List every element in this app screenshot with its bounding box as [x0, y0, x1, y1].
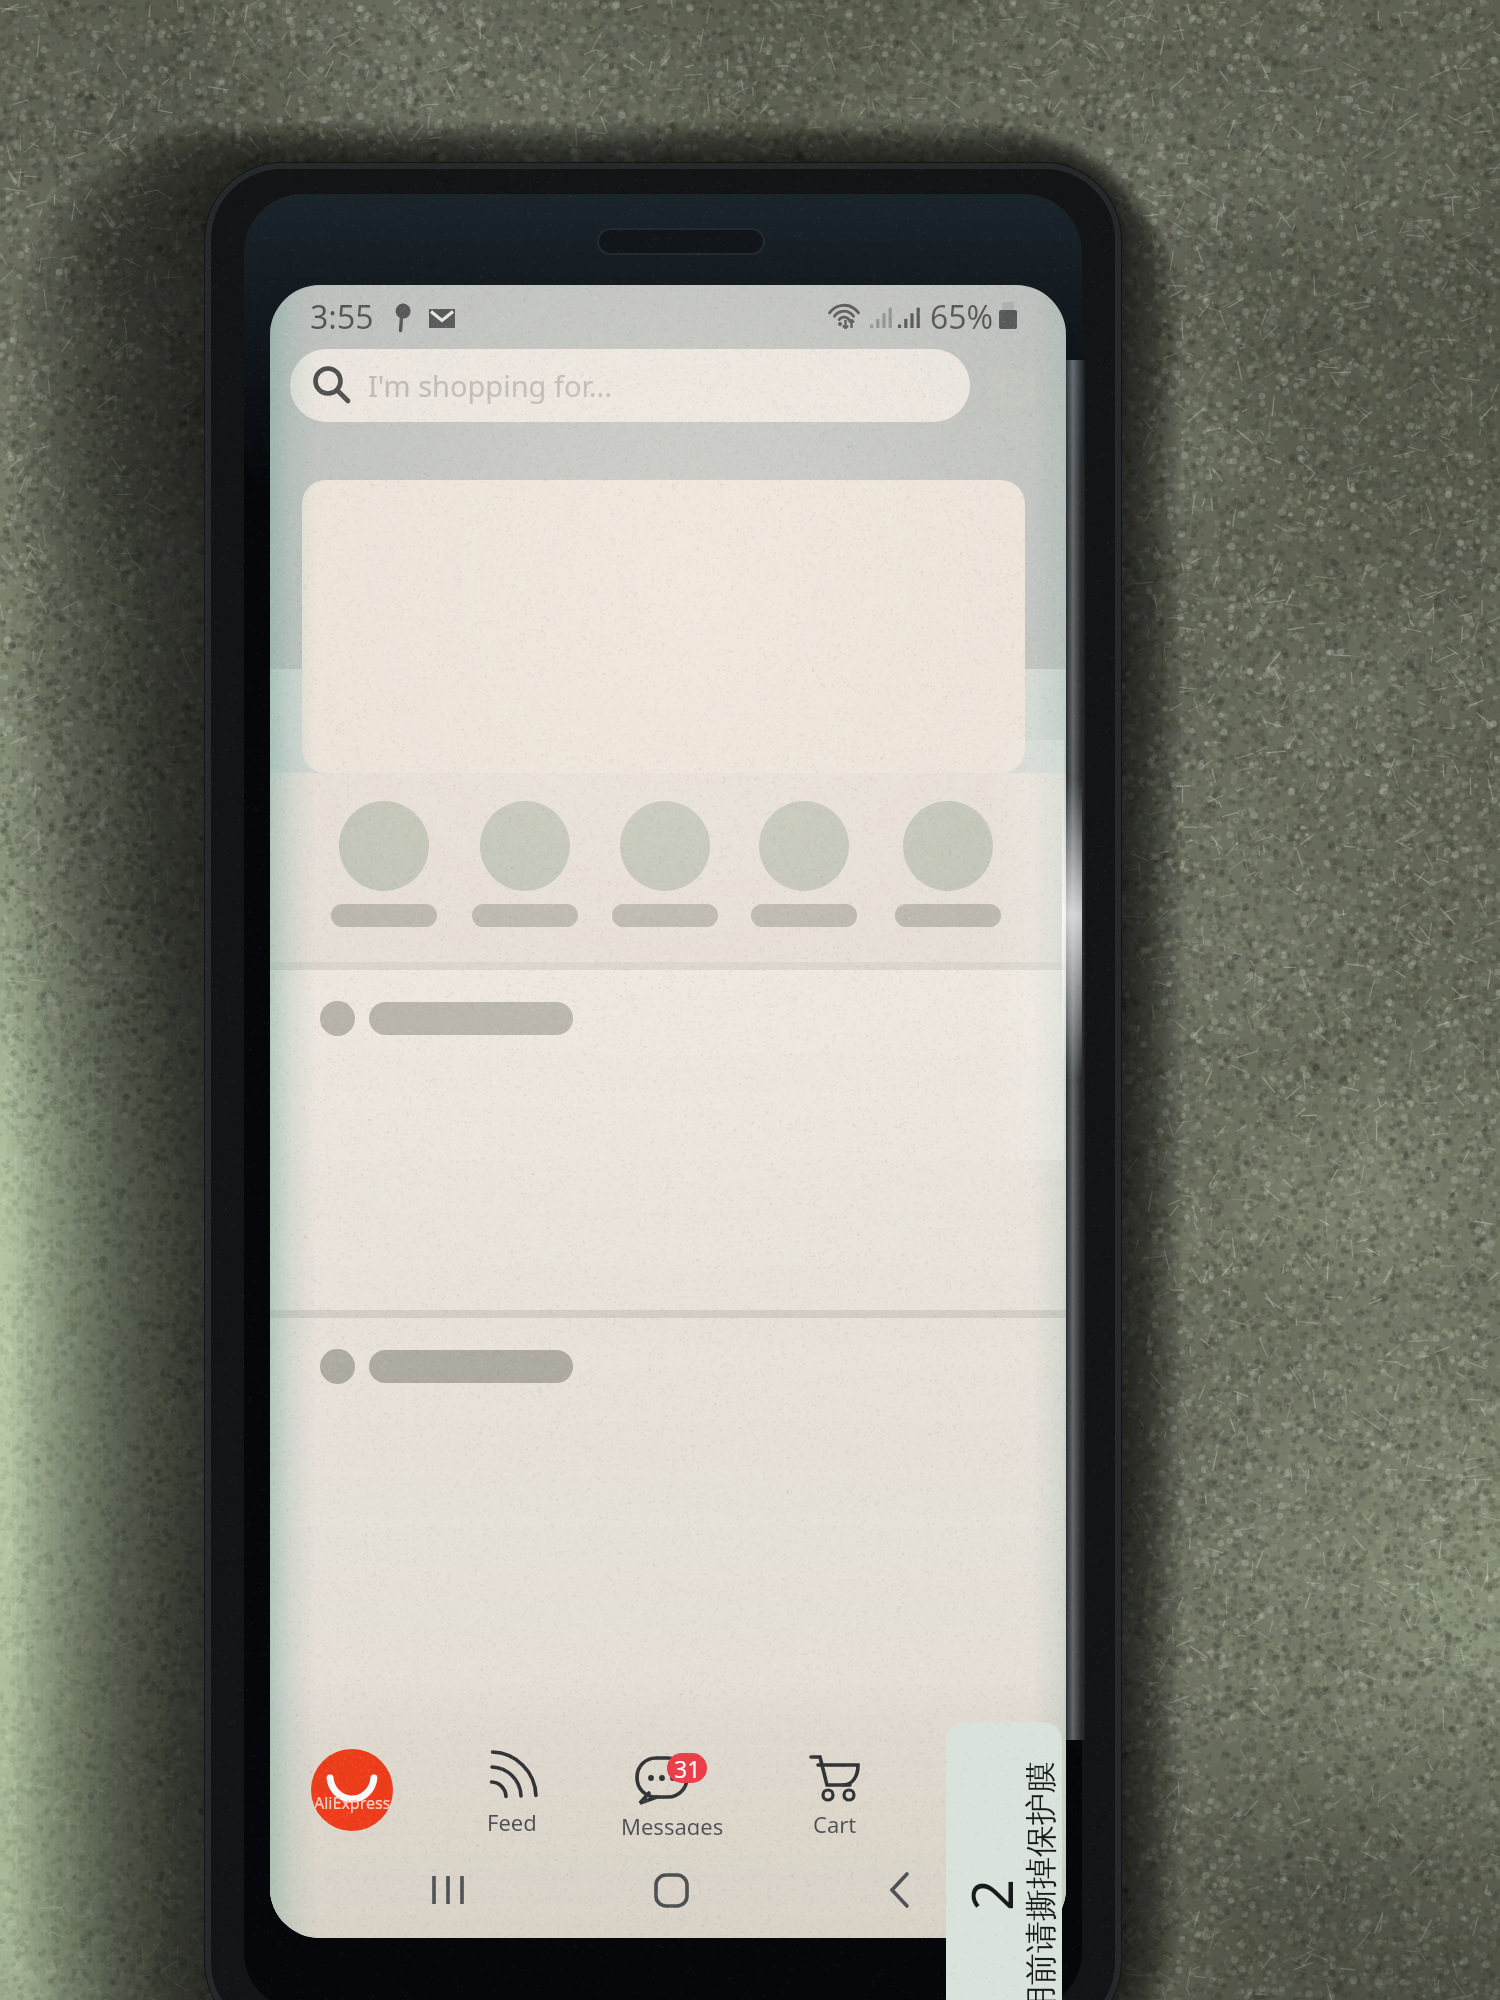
staticText: 31: [674, 1753, 701, 1783]
staticText: I'm shopping for...: [368, 366, 613, 405]
button[interactable]: Home: [633, 1854, 709, 1926]
staticText: 65%: [930, 295, 994, 339]
staticText: AliExpress: [314, 1792, 391, 1814]
staticText: Cart: [813, 1809, 857, 1835]
staticText: 2: [953, 1878, 1023, 1911]
button[interactable]: Feed: [442, 1735, 582, 1835]
staticText: 使用前请撕掉保护膜: [1021, 1761, 1061, 2000]
button[interactable]: I'm shopping for...: [290, 349, 970, 422]
button[interactable]: Recents: [410, 1854, 486, 1926]
staticText: Feed: [487, 1807, 537, 1835]
button[interactable]: Cart: [765, 1735, 905, 1835]
staticText: Messages: [621, 1811, 724, 1835]
button[interactable]: 31: [602, 1735, 742, 1835]
staticText: 3:55: [310, 295, 374, 339]
button[interactable]: Back: [862, 1854, 938, 1926]
button[interactable]: AliExpress home: [311, 1749, 393, 1831]
